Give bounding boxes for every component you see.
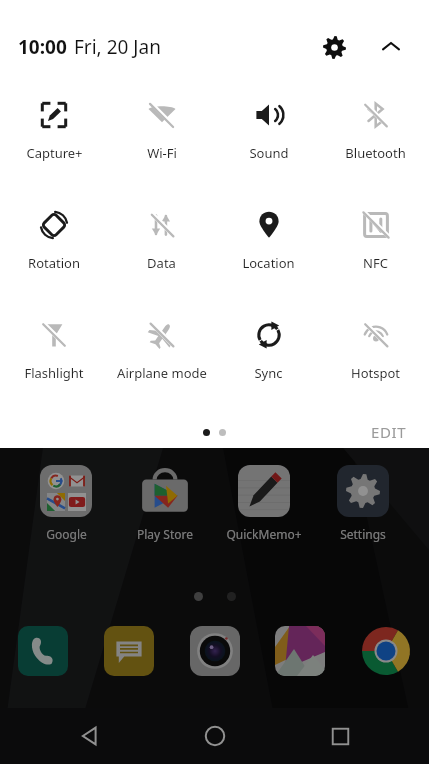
staticText: Wi-Fi: [147, 144, 177, 162]
staticText: Data: [147, 254, 176, 272]
button[interactable]: NFC: [322, 196, 429, 306]
button[interactable]: Gallery: [269, 620, 331, 682]
button[interactable]: Messages: [98, 620, 160, 682]
staticText: Sync: [254, 364, 283, 382]
button[interactable]: Sound: [215, 86, 322, 196]
button[interactable]: Hotspot: [322, 306, 429, 416]
button[interactable]: Settings: [311, 28, 357, 66]
staticText: Airplane mode: [117, 364, 207, 382]
button[interactable]: Sync: [215, 306, 322, 416]
staticText: EDIT: [371, 422, 407, 442]
button[interactable]: Play Store: [122, 463, 208, 542]
button[interactable]: Camera: [184, 620, 246, 682]
staticText: QuickMemo+: [226, 526, 302, 542]
staticText: Google: [46, 526, 87, 542]
button[interactable]: Collapse: [371, 31, 411, 63]
staticText: NFC: [363, 254, 388, 272]
button[interactable]: Airplane mode: [108, 306, 215, 416]
button[interactable]: Wi-Fi: [108, 86, 215, 196]
button[interactable]: Google: [23, 463, 109, 542]
button[interactable]: Flashlight: [0, 306, 108, 416]
button[interactable]: Data: [108, 196, 215, 306]
button[interactable]: EDIT: [363, 416, 415, 448]
staticText: Rotation: [28, 254, 80, 272]
staticText: Bluetooth: [345, 144, 406, 162]
button[interactable]: Location: [215, 196, 322, 306]
staticText: Sound: [249, 144, 289, 162]
staticText: Play Store: [137, 526, 193, 542]
staticText: 10:00: [18, 34, 67, 60]
button[interactable]: Back: [53, 708, 125, 764]
staticText: Capture+: [26, 144, 83, 162]
button[interactable]: Capture+: [0, 86, 108, 196]
staticText: Flashlight: [24, 364, 84, 382]
button[interactable]: Home: [179, 708, 251, 764]
button[interactable]: Rotation: [0, 196, 108, 306]
staticText: Hotspot: [351, 364, 400, 382]
staticText: Location: [242, 254, 295, 272]
button[interactable]: Chrome: [355, 620, 417, 682]
staticText: Settings: [340, 526, 386, 542]
button[interactable]: QuickMemo+: [221, 463, 307, 542]
staticText: Fri, 20 Jan: [74, 34, 161, 60]
button[interactable]: Phone: [12, 620, 74, 682]
button[interactable]: Recents: [304, 708, 376, 764]
button[interactable]: Bluetooth: [322, 86, 429, 196]
button[interactable]: Settings: [320, 463, 406, 542]
